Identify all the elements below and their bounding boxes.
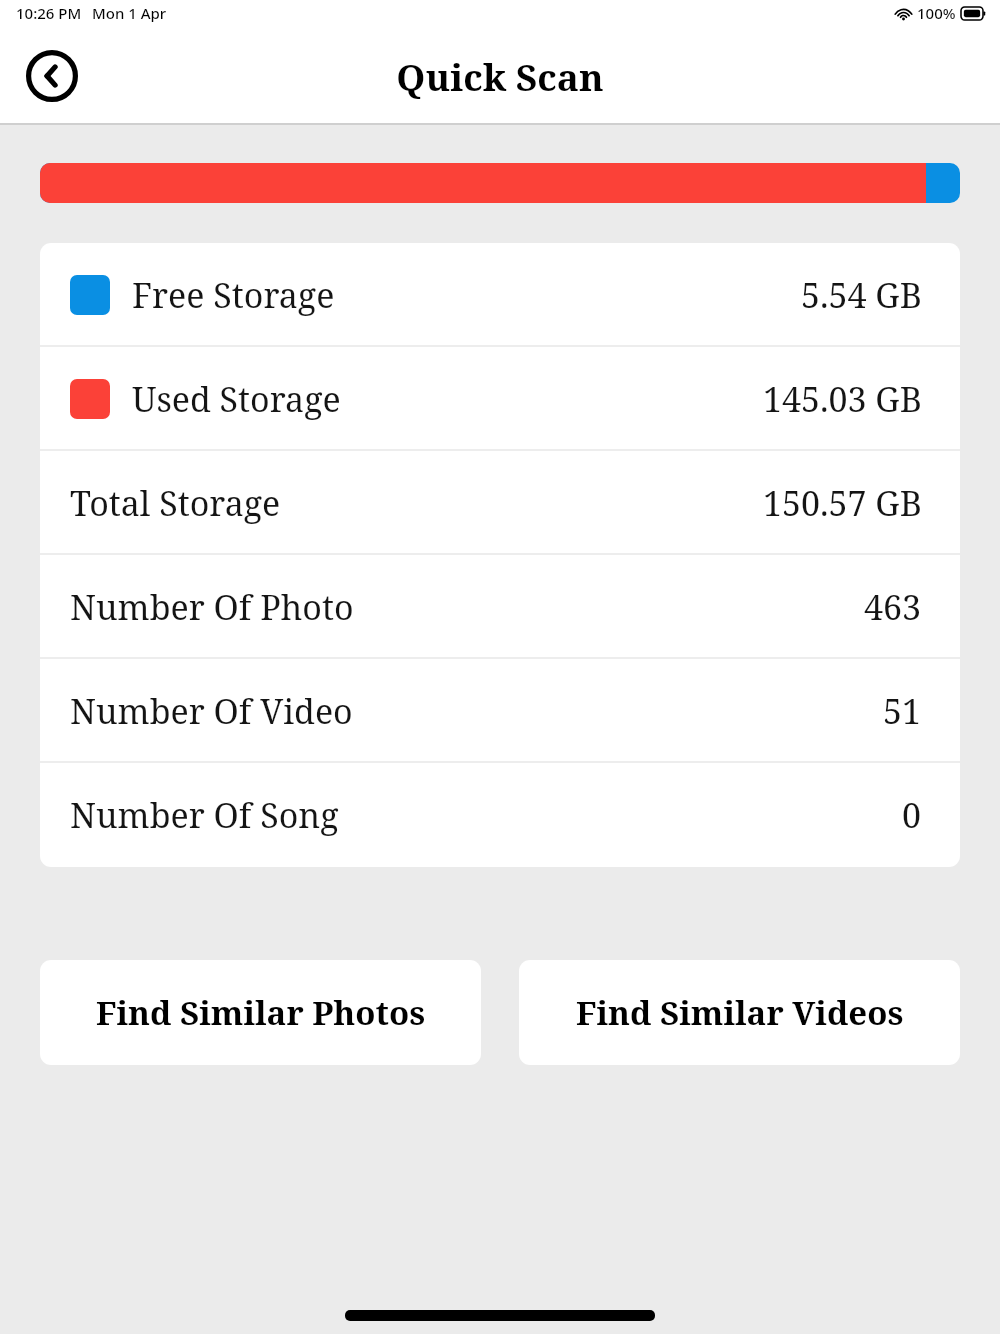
button[interactable]: Number Of Photo bbox=[40, 555, 960, 659]
staticText: Mon 1 Apr bbox=[92, 3, 167, 23]
staticText: Number Of Photo bbox=[70, 584, 354, 630]
button[interactable]: Find Similar Photos bbox=[40, 960, 481, 1065]
staticText: Find Similar Photos bbox=[96, 990, 426, 1035]
staticText: Number Of Song bbox=[70, 792, 339, 838]
staticText: 0 bbox=[902, 792, 922, 838]
staticText: Number Of Video bbox=[70, 688, 353, 734]
staticText: 5.54 GB bbox=[801, 272, 922, 318]
staticText: 150.57 GB bbox=[763, 480, 922, 526]
button[interactable]: Number Of Song bbox=[40, 763, 960, 867]
staticText: 100% bbox=[917, 3, 956, 23]
staticText: Quick Scan bbox=[0, 51, 1000, 101]
button[interactable]: Back bbox=[14, 38, 90, 114]
staticText: 463 bbox=[864, 584, 922, 630]
staticText: Find Similar Videos bbox=[576, 990, 904, 1035]
staticText: Total Storage bbox=[70, 480, 281, 526]
staticText: Free Storage bbox=[132, 272, 335, 318]
button[interactable]: Number Of Video bbox=[40, 659, 960, 763]
staticText: 145.03 GB bbox=[763, 376, 922, 422]
button[interactable]: Find Similar Videos bbox=[519, 960, 960, 1065]
button[interactable]: Free Storage bbox=[40, 243, 960, 347]
button[interactable]: Used Storage bbox=[40, 347, 960, 451]
staticText: Used Storage bbox=[132, 376, 341, 422]
staticText: 51 bbox=[883, 688, 922, 734]
button[interactable]: Total Storage bbox=[40, 451, 960, 555]
staticText: 10:26 PM bbox=[16, 3, 82, 23]
